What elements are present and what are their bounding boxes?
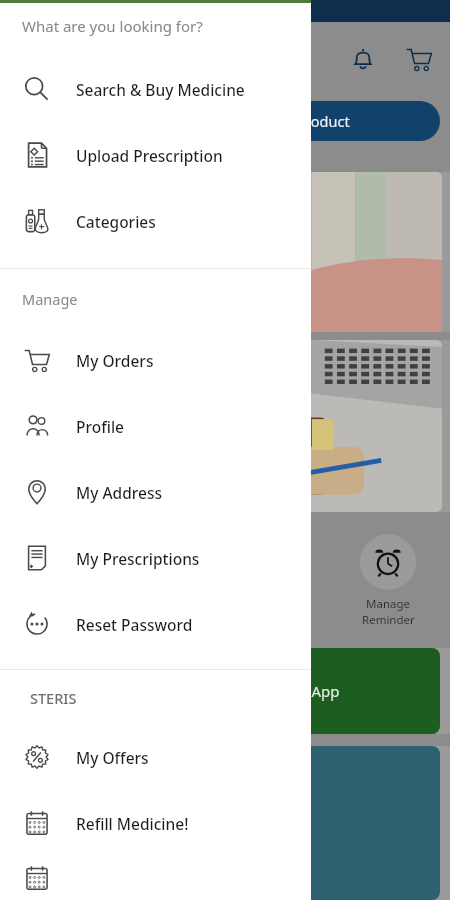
staticText: Manage [366, 596, 410, 612]
staticText: STERIS [30, 688, 77, 708]
button[interactable]: Search & Buy Medicine [0, 56, 311, 122]
staticText: My Address [76, 482, 163, 503]
staticText: My Orders [76, 350, 154, 371]
button[interactable]: Upload Prescription [0, 122, 311, 188]
button[interactable]: My Address [0, 459, 311, 525]
button[interactable]: My Prescriptions [0, 525, 311, 591]
button[interactable] [8, 172, 442, 332]
button[interactable] [0, 856, 311, 900]
button[interactable]: Refill Medicine! [0, 790, 311, 856]
staticText: Search medicine and otc product [126, 111, 350, 131]
staticText: What are you looking for? [22, 16, 203, 36]
button[interactable] [8, 340, 442, 512]
staticText: Categories [76, 211, 156, 232]
staticText: Refer App [270, 681, 340, 701]
staticText: Upload Prescription [76, 145, 223, 166]
staticText: Reset Password [76, 614, 193, 635]
staticText: My Prescriptions [76, 548, 200, 569]
staticText: Reminder [362, 612, 415, 628]
button[interactable]: My Offers [0, 724, 311, 790]
button[interactable]: Notifications [346, 42, 380, 76]
button[interactable] [10, 746, 440, 900]
staticText: Manage [22, 289, 78, 309]
button[interactable]: Cart [402, 42, 436, 76]
button[interactable]: Manage [340, 534, 436, 628]
staticText: Refill Medicine! [76, 813, 189, 834]
button[interactable]: Reset Password [0, 591, 311, 657]
button[interactable]: Categories [0, 188, 311, 254]
staticText: My Offers [76, 747, 149, 768]
button[interactable]: Refer App [10, 648, 440, 734]
button[interactable]: My Orders [0, 327, 311, 393]
staticText: Search & Buy Medicine [76, 79, 245, 100]
button[interactable]: Search medicine and otc product [10, 101, 440, 141]
button[interactable]: Profile [0, 393, 311, 459]
staticText: Profile [76, 416, 124, 437]
